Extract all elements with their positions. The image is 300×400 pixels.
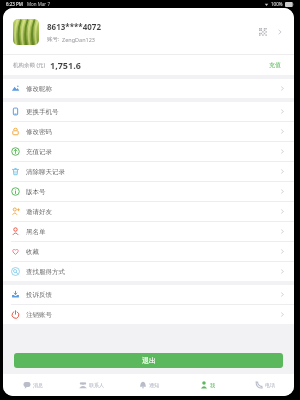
button[interactable]: 清除聊天记录 xyxy=(3,162,294,181)
staticText: 通知 xyxy=(149,382,159,388)
button[interactable]: 联系人 xyxy=(62,374,120,396)
button[interactable]: 版本号 xyxy=(3,182,294,201)
staticText: 收藏 xyxy=(26,248,39,256)
staticText: 账号: xyxy=(47,35,60,43)
button[interactable]: 收藏 xyxy=(3,242,294,261)
button[interactable]: 退出 xyxy=(14,353,283,368)
staticText: 更换手机号 xyxy=(26,108,59,116)
button[interactable]: 充值记录 xyxy=(3,142,294,161)
staticText: 退出 xyxy=(142,356,156,365)
staticText: 投诉反馈 xyxy=(26,291,52,299)
button[interactable]: 投诉反馈 xyxy=(3,285,294,304)
button[interactable]: 修改密码 xyxy=(3,122,294,141)
staticText: 版本号 xyxy=(26,188,46,196)
staticText: Mon Mar 7 xyxy=(27,1,50,7)
staticText: 修改昵称 xyxy=(26,85,52,93)
button[interactable]: 充值 xyxy=(266,59,284,71)
button[interactable]: 通知 xyxy=(120,374,178,396)
button[interactable]: 8613****4072 xyxy=(3,16,294,48)
button[interactable]: 消息 xyxy=(3,374,62,396)
staticText: 邀请好友 xyxy=(26,208,52,216)
staticText: 6:23 PM xyxy=(6,1,23,7)
staticText: 我 xyxy=(210,382,215,388)
button[interactable]: 电话 xyxy=(236,374,294,396)
staticText: 注销账号 xyxy=(26,311,52,319)
staticText: 8613****4072 xyxy=(47,21,101,32)
staticText: 充值记录 xyxy=(26,148,52,156)
staticText: 充值 xyxy=(269,61,281,69)
staticText: 100% xyxy=(271,1,283,7)
staticText: 清除聊天记录 xyxy=(26,168,65,176)
staticText: 联系人 xyxy=(89,382,104,388)
button[interactable]: QR code xyxy=(256,25,270,39)
staticText: 电话 xyxy=(265,382,275,388)
button[interactable]: 我 xyxy=(178,374,236,396)
staticText: 1,751.6 xyxy=(50,59,81,71)
staticText: 查找服得方式 xyxy=(26,268,65,276)
staticText: 消息 xyxy=(33,382,43,388)
button[interactable]: 修改昵称 xyxy=(3,79,294,98)
staticText: ZengDan123 xyxy=(62,36,95,43)
button[interactable]: 注销账号 xyxy=(3,305,294,324)
staticText: 机构余额 (元) xyxy=(13,61,46,69)
button[interactable]: 邀请好友 xyxy=(3,202,294,221)
button[interactable]: 更换手机号 xyxy=(3,102,294,121)
button[interactable]: 黑名单 xyxy=(3,222,294,241)
staticText: 修改密码 xyxy=(26,128,52,136)
staticText: 黑名单 xyxy=(26,228,46,236)
button[interactable]: 查找服得方式 xyxy=(3,262,294,281)
